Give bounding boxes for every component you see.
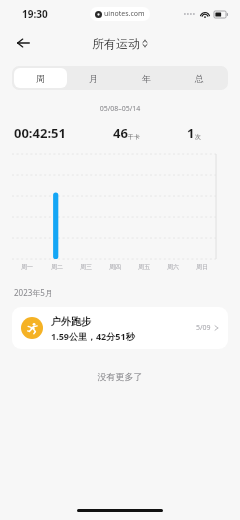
staticText: 周二 bbox=[51, 263, 63, 271]
staticText: 周三 bbox=[80, 263, 92, 271]
staticText: 年 bbox=[142, 73, 151, 84]
staticText: 19:30 bbox=[22, 7, 48, 21]
button[interactable]: 月 bbox=[67, 68, 120, 88]
button[interactable]: 总 bbox=[173, 68, 226, 88]
staticText: 千卡 bbox=[128, 133, 140, 141]
staticText: 户外跑步 bbox=[51, 315, 91, 328]
staticText: 周日 bbox=[196, 263, 208, 271]
staticText: 周五 bbox=[138, 263, 150, 271]
staticText: 5/09 bbox=[196, 323, 211, 333]
staticText: 总 bbox=[195, 73, 204, 84]
staticText: 月 bbox=[89, 73, 98, 84]
staticText: 00:42:51 bbox=[14, 124, 66, 142]
button[interactable]: 周 bbox=[14, 68, 67, 88]
staticText: 05/08–05/14 bbox=[0, 104, 240, 114]
button[interactable]: Back bbox=[10, 30, 36, 56]
button[interactable]: 年 bbox=[120, 68, 173, 88]
staticText: 周 bbox=[36, 73, 45, 84]
staticText: 周一 bbox=[21, 263, 33, 271]
button[interactable]: 户外跑步 bbox=[12, 307, 228, 349]
staticText: 1 bbox=[187, 124, 195, 142]
staticText: 所有运动 bbox=[92, 36, 140, 51]
staticText: 没有更多了 bbox=[0, 371, 240, 382]
staticText: 46 bbox=[113, 124, 128, 142]
staticText: 2023年5月 bbox=[14, 287, 53, 298]
staticText: 1.59公里，42分51秒 bbox=[51, 330, 135, 342]
staticText: uinotes.com bbox=[104, 9, 145, 19]
staticText: 次 bbox=[195, 133, 201, 141]
staticText: 周六 bbox=[167, 263, 179, 271]
staticText: 周四 bbox=[109, 263, 121, 271]
button[interactable]: 所有运动 bbox=[92, 36, 148, 51]
